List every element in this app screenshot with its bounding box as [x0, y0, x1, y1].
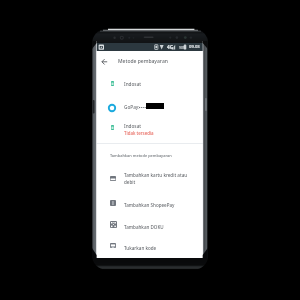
button[interactable]: GoPay:	[96, 100, 203, 120]
staticText: debit	[124, 179, 136, 185]
button[interactable]: Tukarkan kode	[96, 241, 203, 263]
button[interactable]: Tambahkan kartu kredit atau	[96, 171, 203, 193]
staticText: 09.03	[189, 44, 200, 50]
button[interactable]: Tambahkan metode pembayaran	[110, 153, 172, 158]
button[interactable]: Indosat	[96, 80, 203, 100]
staticText: Indosat	[124, 81, 142, 87]
staticText: Tambahkan DOKU	[124, 224, 164, 230]
staticText: Tidak tersedia	[124, 130, 154, 136]
staticText: GoPay:	[124, 104, 141, 110]
staticText: 4G	[167, 44, 174, 50]
button[interactable]: Back	[99, 56, 110, 67]
staticText: Tukarkan kode	[124, 245, 157, 251]
button[interactable]: Tambahkan ShopeePay	[96, 198, 203, 220]
staticText: 90%	[179, 45, 186, 49]
staticText: Tambahkan ShopeePay	[124, 202, 175, 208]
staticText: Tambahkan kartu kredit atau	[124, 172, 188, 178]
staticText: Metode pembayaran	[118, 58, 168, 65]
staticText: Indosat	[124, 123, 142, 129]
button[interactable]: Tambahkan DOKU	[96, 220, 203, 242]
button[interactable]: Indosat	[96, 122, 203, 144]
